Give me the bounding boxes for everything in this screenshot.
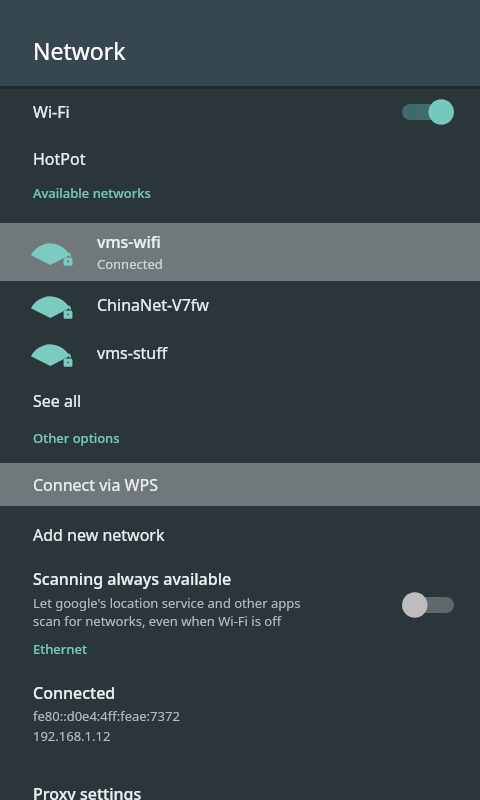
staticText: vms-wifi xyxy=(97,231,161,253)
staticText: Available networks xyxy=(33,184,480,202)
staticText: Add new network xyxy=(33,524,165,546)
button[interactable]: vms-wifi xyxy=(0,223,480,281)
staticText: vms-stuff xyxy=(97,342,168,364)
staticText: Connected xyxy=(97,255,163,273)
button[interactable]: Add new network xyxy=(0,506,480,563)
staticText: 192.168.1.12 xyxy=(33,727,111,745)
staticText: HotPot xyxy=(33,148,86,170)
button[interactable]: Connect via WPS xyxy=(0,463,480,506)
staticText: Connect via WPS xyxy=(33,474,158,496)
button[interactable]: ChinaNet-V7fw xyxy=(0,281,480,329)
button[interactable]: Proxy settings xyxy=(0,783,480,800)
button[interactable]: Connected xyxy=(0,682,480,745)
button[interactable]: Scanning always available xyxy=(0,563,480,635)
staticText: ChinaNet-V7fw xyxy=(97,294,209,316)
staticText: Wi-Fi xyxy=(33,101,70,123)
button[interactable]: Wi-Fi xyxy=(0,89,480,135)
staticText: Other options xyxy=(33,429,480,447)
button[interactable]: HotPot xyxy=(0,135,480,183)
staticText: Proxy settings xyxy=(33,783,142,800)
button[interactable]: See all xyxy=(0,377,480,425)
button[interactable]: vms-stuff xyxy=(0,329,480,377)
staticText: Ethernet xyxy=(33,640,480,658)
staticText: See all xyxy=(33,390,82,412)
staticText: Scanning always available xyxy=(33,568,232,590)
staticText: Network xyxy=(33,35,126,66)
staticText: Connected xyxy=(33,682,116,704)
staticText: Let google's location service and other … xyxy=(33,594,301,630)
staticText: fe80::d0e4:4ff:feae:7372 xyxy=(33,707,180,725)
